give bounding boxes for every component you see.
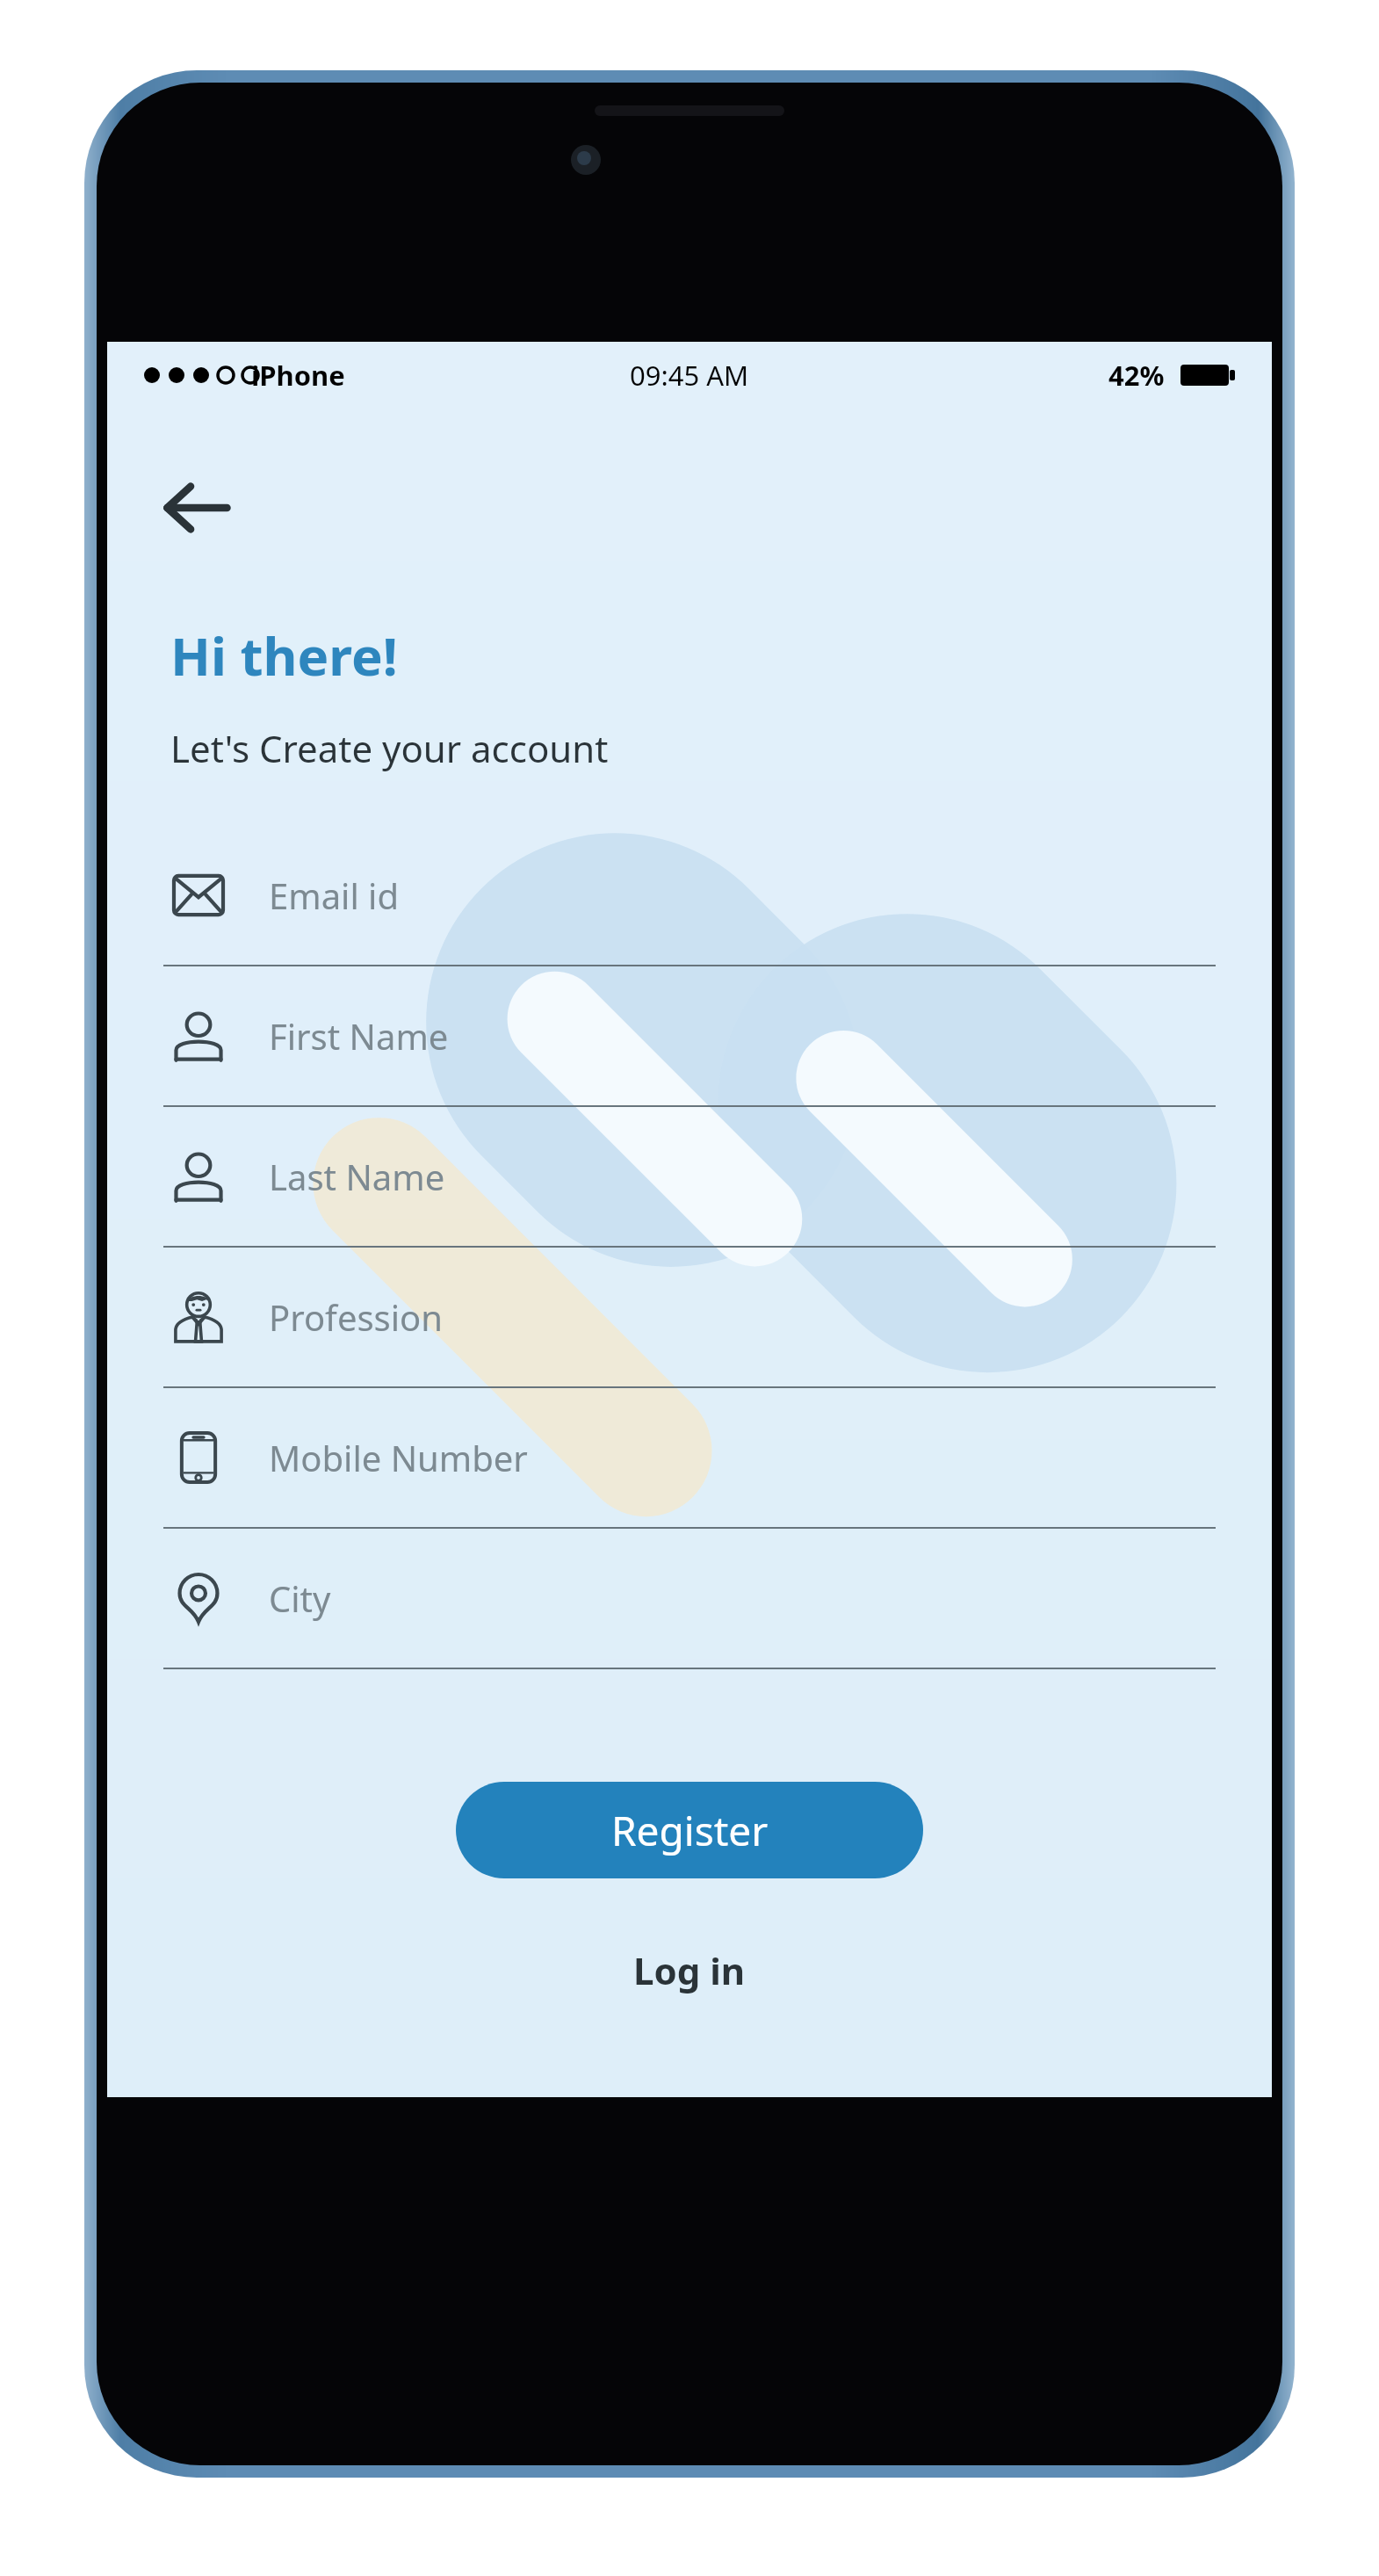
button[interactable]: Profession <box>107 1248 1272 1388</box>
button[interactable]: Email id <box>107 826 1272 966</box>
staticText: Let's Create your account <box>170 723 609 773</box>
button[interactable]: First Name <box>107 966 1272 1107</box>
staticText: 42% <box>1108 357 1165 394</box>
staticText: iPhone <box>251 357 345 394</box>
button[interactable]: Log in <box>598 1933 781 2008</box>
staticText: 09:45 AM <box>630 357 749 394</box>
button[interactable]: City <box>107 1529 1272 1669</box>
staticText: Log in <box>633 1945 746 1995</box>
staticText: First Name <box>269 1012 449 1060</box>
staticText: Hi there! <box>170 619 398 691</box>
staticText: Email id <box>269 872 400 919</box>
staticText: Last Name <box>269 1153 445 1200</box>
staticText: Mobile Number <box>269 1434 528 1481</box>
button[interactable]: Register <box>456 1782 923 1878</box>
staticText: Register <box>611 1803 769 1858</box>
button[interactable]: Mobile Number <box>107 1388 1272 1529</box>
staticText: Profession <box>269 1293 443 1341</box>
button[interactable]: Back <box>148 459 244 556</box>
button[interactable]: Last Name <box>107 1107 1272 1248</box>
staticText: City <box>269 1574 331 1622</box>
